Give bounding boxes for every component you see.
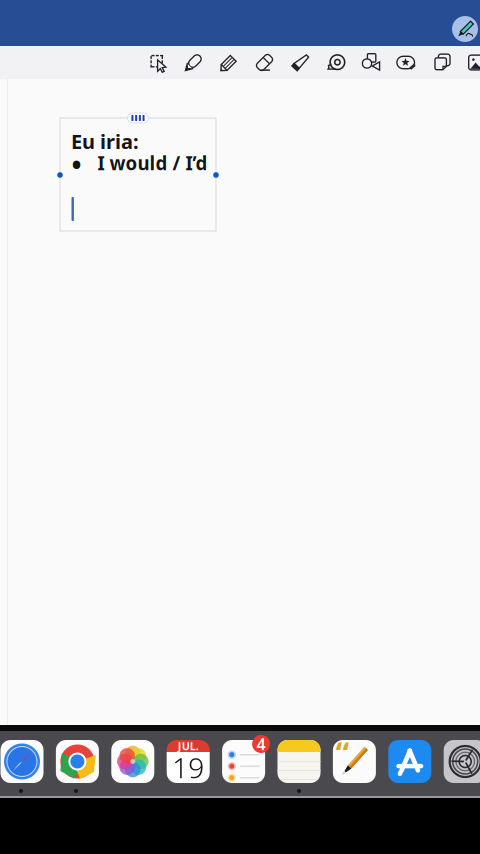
button[interactable]: Calendar (167, 740, 210, 783)
staticText: 4 (257, 733, 266, 755)
staticText: “ (335, 732, 349, 773)
button[interactable]: Pen (179, 48, 207, 76)
button[interactable]: Notes (277, 740, 320, 783)
button[interactable]: Insert image (463, 48, 480, 76)
button[interactable]: Stickers (392, 48, 420, 76)
button[interactable]: Chrome (56, 740, 99, 783)
button[interactable]: Safari (0, 740, 43, 783)
button[interactable]: Sticky note (428, 48, 456, 76)
button[interactable]: Tape (321, 48, 349, 76)
staticText: JUL. (178, 739, 199, 753)
button[interactable]: Shapes (357, 48, 385, 76)
button[interactable]: Highlighter (286, 48, 314, 76)
button[interactable]: Pencil (215, 48, 243, 76)
button[interactable]: Compose (452, 16, 478, 42)
staticText: Eu iria: (71, 128, 139, 155)
button[interactable]: Select (144, 48, 172, 76)
button[interactable]: Reminders (222, 740, 265, 783)
button[interactable]: Writer (333, 740, 376, 783)
button[interactable]: Photos (111, 740, 154, 783)
button[interactable]: Settings (444, 740, 480, 783)
button[interactable]: Eraser (250, 48, 278, 76)
staticText: 19 (172, 749, 204, 786)
staticText: I would / I’d (97, 150, 207, 175)
button[interactable]: App Store (388, 740, 431, 783)
staticText: • (71, 147, 81, 182)
